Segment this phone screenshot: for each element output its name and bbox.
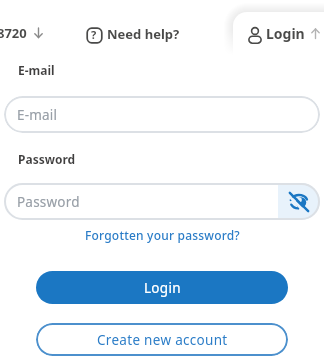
staticText: E-mail [18, 62, 55, 78]
button[interactable]: ? [86, 24, 159, 42]
staticText: Forgotten your password? [85, 227, 240, 243]
staticText: Password [18, 151, 76, 167]
button[interactable]: Login [246, 20, 285, 39]
button[interactable]: Create new account [36, 323, 288, 356]
staticText: 8720 [0, 24, 27, 42]
staticText: Password [17, 193, 80, 211]
button[interactable]: E-mail [4, 96, 320, 133]
button[interactable]: 8720 [0, 24, 27, 42]
button[interactable]: Forgotten your password? [85, 227, 240, 243]
button[interactable]: Login [36, 271, 288, 304]
staticText: Need help? [107, 25, 180, 43]
button[interactable]: Password [4, 183, 320, 220]
button[interactable] [278, 183, 320, 220]
staticText: ? [91, 27, 97, 42]
staticText: Login [266, 24, 305, 43]
staticText: Login [144, 279, 181, 297]
staticText: Create new account [97, 331, 228, 349]
staticText: E-mail [17, 106, 58, 124]
